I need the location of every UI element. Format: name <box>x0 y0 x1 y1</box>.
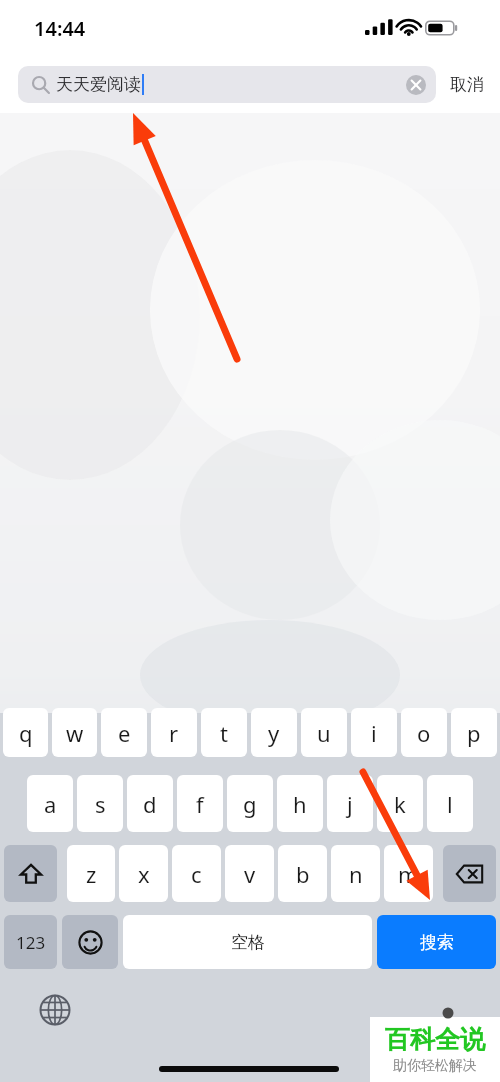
staticText: y <box>268 718 280 748</box>
button[interactable]: q <box>3 708 48 757</box>
button[interactable]: k <box>377 775 423 832</box>
staticText: a <box>44 789 57 819</box>
staticText: 天天爱阅读 <box>56 74 141 95</box>
button[interactable]: Clear text <box>406 75 426 95</box>
button[interactable]: t <box>201 708 247 757</box>
button[interactable]: c <box>172 845 221 902</box>
button[interactable]: i <box>351 708 397 757</box>
staticText: w <box>66 718 84 748</box>
button[interactable]: m <box>384 845 433 902</box>
button[interactable]: a <box>27 775 73 832</box>
staticText: u <box>317 718 331 748</box>
staticText: p <box>467 718 481 748</box>
staticText: o <box>417 718 431 748</box>
staticText: 搜索 <box>420 932 454 953</box>
staticText: s <box>95 789 106 819</box>
button[interactable]: y <box>251 708 297 757</box>
staticText: r <box>169 718 179 748</box>
button[interactable]: p <box>451 708 497 757</box>
staticText: l <box>447 789 453 819</box>
button[interactable]: 123 <box>4 915 57 969</box>
staticText: c <box>191 859 202 889</box>
staticText: i <box>371 718 377 748</box>
button[interactable]: g <box>227 775 273 832</box>
button[interactable]: Emoji <box>62 915 118 969</box>
button[interactable]: l <box>427 775 473 832</box>
staticText: n <box>349 859 363 889</box>
staticText: 空格 <box>231 932 265 953</box>
button[interactable]: x <box>119 845 168 902</box>
button[interactable]: b <box>278 845 327 902</box>
staticText: z <box>86 859 97 889</box>
staticText: t <box>220 718 228 748</box>
button[interactable]: 搜索 <box>377 915 496 969</box>
button[interactable]: u <box>301 708 347 757</box>
staticText: q <box>19 718 33 748</box>
button[interactable]: 天天爱阅读 <box>18 66 436 103</box>
staticText: 取消 <box>450 74 484 95</box>
staticText: f <box>196 789 204 819</box>
button[interactable]: s <box>77 775 123 832</box>
button[interactable]: Shift <box>4 845 57 902</box>
staticText: b <box>296 859 310 889</box>
button[interactable]: o <box>401 708 447 757</box>
staticText: 百科全说 <box>385 1024 485 1055</box>
button[interactable]: 取消 <box>450 74 484 95</box>
staticText: 助你轻松解决 <box>393 1057 477 1075</box>
staticText: m <box>398 859 419 889</box>
staticText: v <box>244 859 256 889</box>
staticText: 14:44 <box>34 15 86 42</box>
staticText: x <box>138 859 150 889</box>
button[interactable]: w <box>52 708 97 757</box>
button[interactable]: j <box>327 775 373 832</box>
staticText: h <box>293 789 307 819</box>
button[interactable]: 空格 <box>123 915 372 969</box>
button[interactable]: e <box>101 708 147 757</box>
button[interactable]: d <box>127 775 173 832</box>
staticText: 123 <box>16 931 46 954</box>
button[interactable]: h <box>277 775 323 832</box>
button[interactable]: v <box>225 845 274 902</box>
button[interactable]: n <box>331 845 380 902</box>
button[interactable]: r <box>151 708 197 757</box>
button[interactable]: z <box>67 845 115 902</box>
staticText: k <box>394 789 406 819</box>
staticText: j <box>347 789 353 819</box>
staticText: g <box>243 789 257 819</box>
staticText: e <box>118 718 131 748</box>
button[interactable]: Backspace <box>443 845 496 902</box>
staticText: d <box>143 789 157 819</box>
button[interactable]: f <box>177 775 223 832</box>
button[interactable]: Change keyboard <box>38 993 72 1027</box>
